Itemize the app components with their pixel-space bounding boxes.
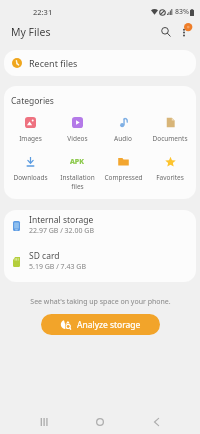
staticText: Audio — [114, 134, 132, 143]
button[interactable]: Internal storage — [4, 210, 196, 246]
staticText: Videos — [67, 134, 88, 143]
staticText: APK — [70, 157, 84, 167]
staticText: 22.97 GB / 32.00 GB — [29, 226, 94, 236]
staticText: My Files — [11, 25, 51, 39]
button[interactable]: Videos — [56, 117, 98, 143]
button[interactable]: Recents — [33, 411, 55, 433]
staticText: Favorites — [156, 173, 184, 182]
button[interactable]: SD card — [4, 246, 196, 282]
staticText: files — [71, 182, 84, 191]
staticText: Documents — [152, 134, 188, 143]
button[interactable]: Compressed — [102, 156, 144, 182]
button[interactable]: Documents — [149, 117, 191, 143]
button[interactable]: Search — [155, 22, 177, 42]
staticText: Compressed — [104, 173, 143, 182]
staticText: Internal storage — [29, 214, 94, 226]
button[interactable]: APK — [56, 156, 98, 191]
button[interactable]: Analyze storage — [41, 314, 160, 335]
staticText: Analyze storage — [77, 319, 141, 331]
button[interactable]: More options — [174, 22, 196, 42]
staticText: Recent files — [29, 57, 78, 69]
staticText: SD card — [29, 250, 60, 262]
staticText: See what's taking up space on your phone… — [30, 297, 171, 307]
button[interactable]: Recent files — [4, 50, 196, 76]
button[interactable]: Favorites — [149, 156, 191, 182]
button[interactable]: Downloads — [9, 156, 51, 182]
staticText: Categories — [11, 95, 54, 107]
button[interactable]: Images — [9, 117, 51, 143]
button[interactable]: Home — [89, 411, 111, 433]
staticText: 83% — [175, 7, 189, 17]
staticText: Installation — [60, 173, 95, 182]
staticText: 22:31 — [33, 7, 53, 17]
button[interactable]: Audio — [102, 117, 144, 143]
button[interactable]: Back — [145, 411, 167, 433]
staticText: Downloads — [13, 173, 48, 182]
staticText: 5.19 GB / 7.43 GB — [29, 262, 86, 272]
staticText: Images — [19, 134, 42, 143]
